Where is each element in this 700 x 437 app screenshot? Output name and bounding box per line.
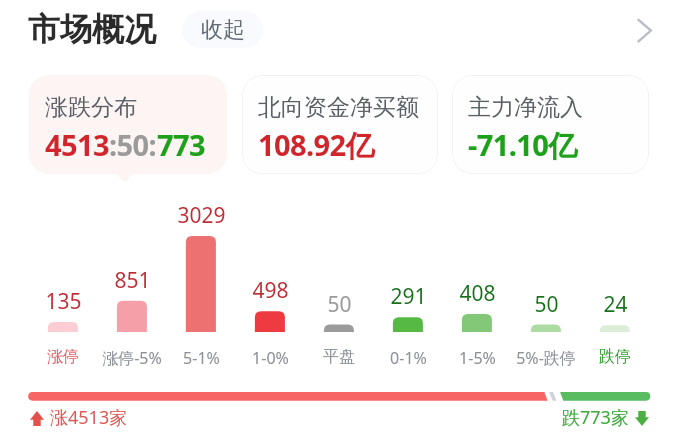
staticText: 北向资金净买额 [258, 93, 419, 122]
staticText: 851 [114, 266, 151, 295]
staticText: 1-0% [252, 347, 289, 369]
button[interactable]: 主力净流入 [452, 75, 649, 174]
staticText: 涨跌分布 [45, 93, 137, 122]
staticText: 4513 [45, 125, 109, 164]
staticText: 收起 [201, 16, 245, 44]
button[interactable]: 北向资金净买额 [242, 75, 438, 174]
staticText: 5-1% [183, 347, 220, 369]
button[interactable]: 涨跌分布 [29, 75, 227, 174]
staticText: 1-5% [459, 347, 496, 369]
staticText: 0-1% [390, 347, 427, 369]
staticText: 主力净流入 [468, 93, 583, 122]
staticText: 773 [157, 125, 205, 164]
staticText: 涨停 [47, 347, 79, 367]
staticText: 135 [45, 287, 82, 316]
staticText: 3029 [177, 201, 226, 230]
staticText: 市场概况 [28, 9, 156, 49]
staticText: 408 [459, 279, 496, 308]
staticText: 291 [390, 282, 427, 311]
button[interactable]: 涨4513家 [30, 405, 128, 430]
staticText: 50 [327, 290, 352, 319]
staticText: 24 [603, 290, 628, 319]
staticText: 498 [252, 276, 289, 305]
staticText: 跌停 [599, 347, 631, 367]
staticText: 5%-跌停 [516, 347, 576, 369]
staticText: -71.10亿 [468, 125, 577, 165]
staticText: :50: [109, 125, 157, 164]
button[interactable]: 收起 [182, 11, 263, 48]
staticText: 跌773家 [562, 405, 629, 430]
button[interactable]: More [624, 7, 668, 51]
staticText: 涨4513家 [50, 405, 128, 430]
button[interactable]: 跌773家 [562, 405, 649, 430]
staticText: 50 [534, 290, 559, 319]
staticText: 平盘 [323, 347, 355, 367]
staticText: 涨停-5% [102, 347, 162, 369]
staticText: 108.92亿 [258, 125, 374, 165]
